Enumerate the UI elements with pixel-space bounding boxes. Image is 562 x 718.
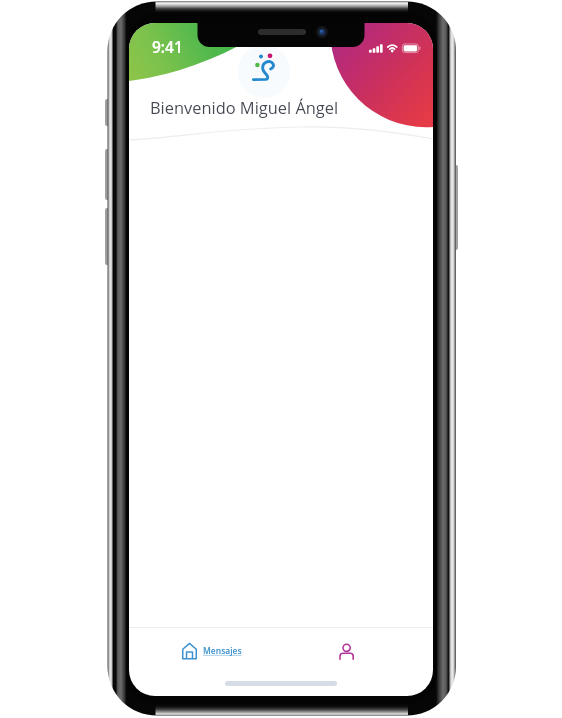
staticText: Bienvenido Miguel Ángel: [150, 96, 339, 118]
button[interactable]: Mensajes: [172, 637, 250, 664]
staticText: 9:41: [152, 36, 183, 57]
button[interactable]: Perfil: [334, 638, 360, 662]
staticText: Mensajes: [203, 645, 242, 657]
